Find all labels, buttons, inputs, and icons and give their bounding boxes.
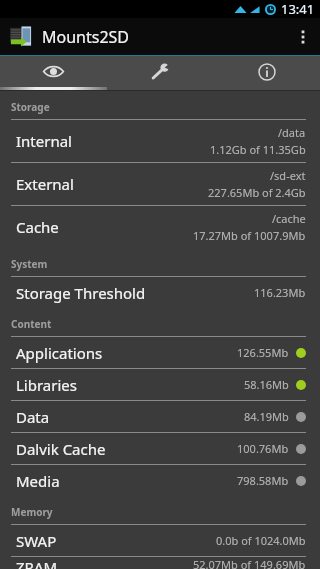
button[interactable]: Data [0, 401, 320, 432]
button[interactable]: Internal [0, 120, 320, 162]
staticText: Applications [16, 343, 103, 363]
staticText: /cache [272, 211, 306, 226]
staticText: Storage [11, 100, 50, 114]
button[interactable]: Cache [0, 206, 320, 248]
staticText: 17.27Mb of 1007.9Mb [193, 228, 306, 243]
staticText: ZRAM [16, 557, 58, 569]
button[interactable]: Settings [106, 56, 213, 87]
staticText: /data [278, 125, 306, 140]
button[interactable]: Storage Threshold [0, 277, 320, 308]
staticText: Memory [11, 505, 53, 519]
staticText: 798.58Mb [237, 473, 289, 488]
button[interactable]: Applications [0, 337, 320, 368]
staticText: System [11, 257, 48, 271]
staticText: 58.16Mb [244, 377, 289, 392]
staticText: Media [16, 471, 60, 491]
button[interactable]: Media [0, 465, 320, 496]
staticText: 116.23Mb [254, 285, 306, 300]
staticText: 1.12Gb of 11.35Gb [210, 142, 306, 157]
staticText: Storage Threshold [16, 283, 146, 303]
staticText: 227.65Mb of 2.4Gb [208, 185, 306, 200]
staticText: Dalvik Cache [16, 439, 106, 459]
staticText: 0.0b of 1024.0Mb [216, 533, 306, 548]
button[interactable]: Info [213, 56, 320, 87]
staticText: Mounts2SD [42, 26, 130, 48]
staticText: Internal [16, 131, 72, 151]
staticText: Libraries [16, 375, 77, 395]
staticText: 126.55Mb [237, 345, 289, 360]
staticText: Cache [16, 217, 59, 237]
staticText: 13:41 [281, 0, 315, 18]
staticText: 52.07Mb of 149.69Mb [193, 557, 306, 569]
staticText: /sd-ext [270, 168, 306, 183]
button[interactable]: Libraries [0, 369, 320, 400]
staticText: Content [11, 317, 52, 331]
staticText: External [16, 174, 74, 194]
button[interactable]: Overview [0, 56, 106, 87]
button[interactable]: SWAP [0, 525, 320, 556]
button[interactable]: Dalvik Cache [0, 433, 320, 464]
button[interactable]: External [0, 163, 320, 205]
staticText: SWAP [16, 531, 57, 551]
button[interactable]: More options [286, 18, 320, 56]
staticText: 100.76Mb [237, 441, 289, 456]
staticText: 84.19Mb [244, 409, 289, 424]
button[interactable]: ZRAM [0, 557, 320, 569]
staticText: Data [16, 407, 50, 427]
